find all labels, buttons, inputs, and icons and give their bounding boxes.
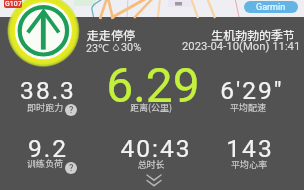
staticText: 143 [100, 134, 304, 163]
button[interactable] [105, 55, 201, 113]
staticText: 平均心率 [99, 158, 304, 171]
staticText: 6'29" [102, 76, 304, 105]
staticText: 平均配速 [98, 101, 304, 114]
staticText: G107 [5, 0, 22, 8]
staticText: ? [69, 105, 74, 116]
staticText: 6.29 [3, 57, 303, 113]
staticText: ? [69, 163, 74, 174]
button[interactable] [0, 74, 95, 113]
button[interactable] [203, 74, 299, 113]
button[interactable] [0, 132, 95, 170]
button[interactable]: Help [65, 162, 77, 174]
staticText: 30% [121, 41, 142, 54]
staticText: 23℃ [86, 40, 109, 55]
staticText: 9.2 [0, 134, 198, 163]
staticText: 生机勃勃的季节 [211, 26, 296, 43]
button[interactable] [201, 132, 297, 170]
button[interactable]: Scroll down [140, 171, 168, 190]
staticText: 2023-04-10(Mon) 11:41 [182, 40, 301, 53]
button[interactable]: Help [65, 104, 77, 116]
button[interactable] [86, 26, 170, 52]
button[interactable]: Garmin [244, 1, 298, 13]
staticText: 训练负荷 [0, 157, 195, 170]
other: Go straight [0, 0, 304, 190]
staticText: 总时长 [1, 158, 301, 171]
staticText: Garmin [256, 2, 286, 13]
staticText: 38.3 [0, 76, 198, 105]
button[interactable] [107, 132, 203, 170]
staticText: 距离(公里) [1, 101, 301, 114]
staticText: 走走停停 [87, 26, 136, 43]
staticText: 即时跑力 [0, 101, 195, 114]
staticText: 40:43 [6, 134, 304, 163]
